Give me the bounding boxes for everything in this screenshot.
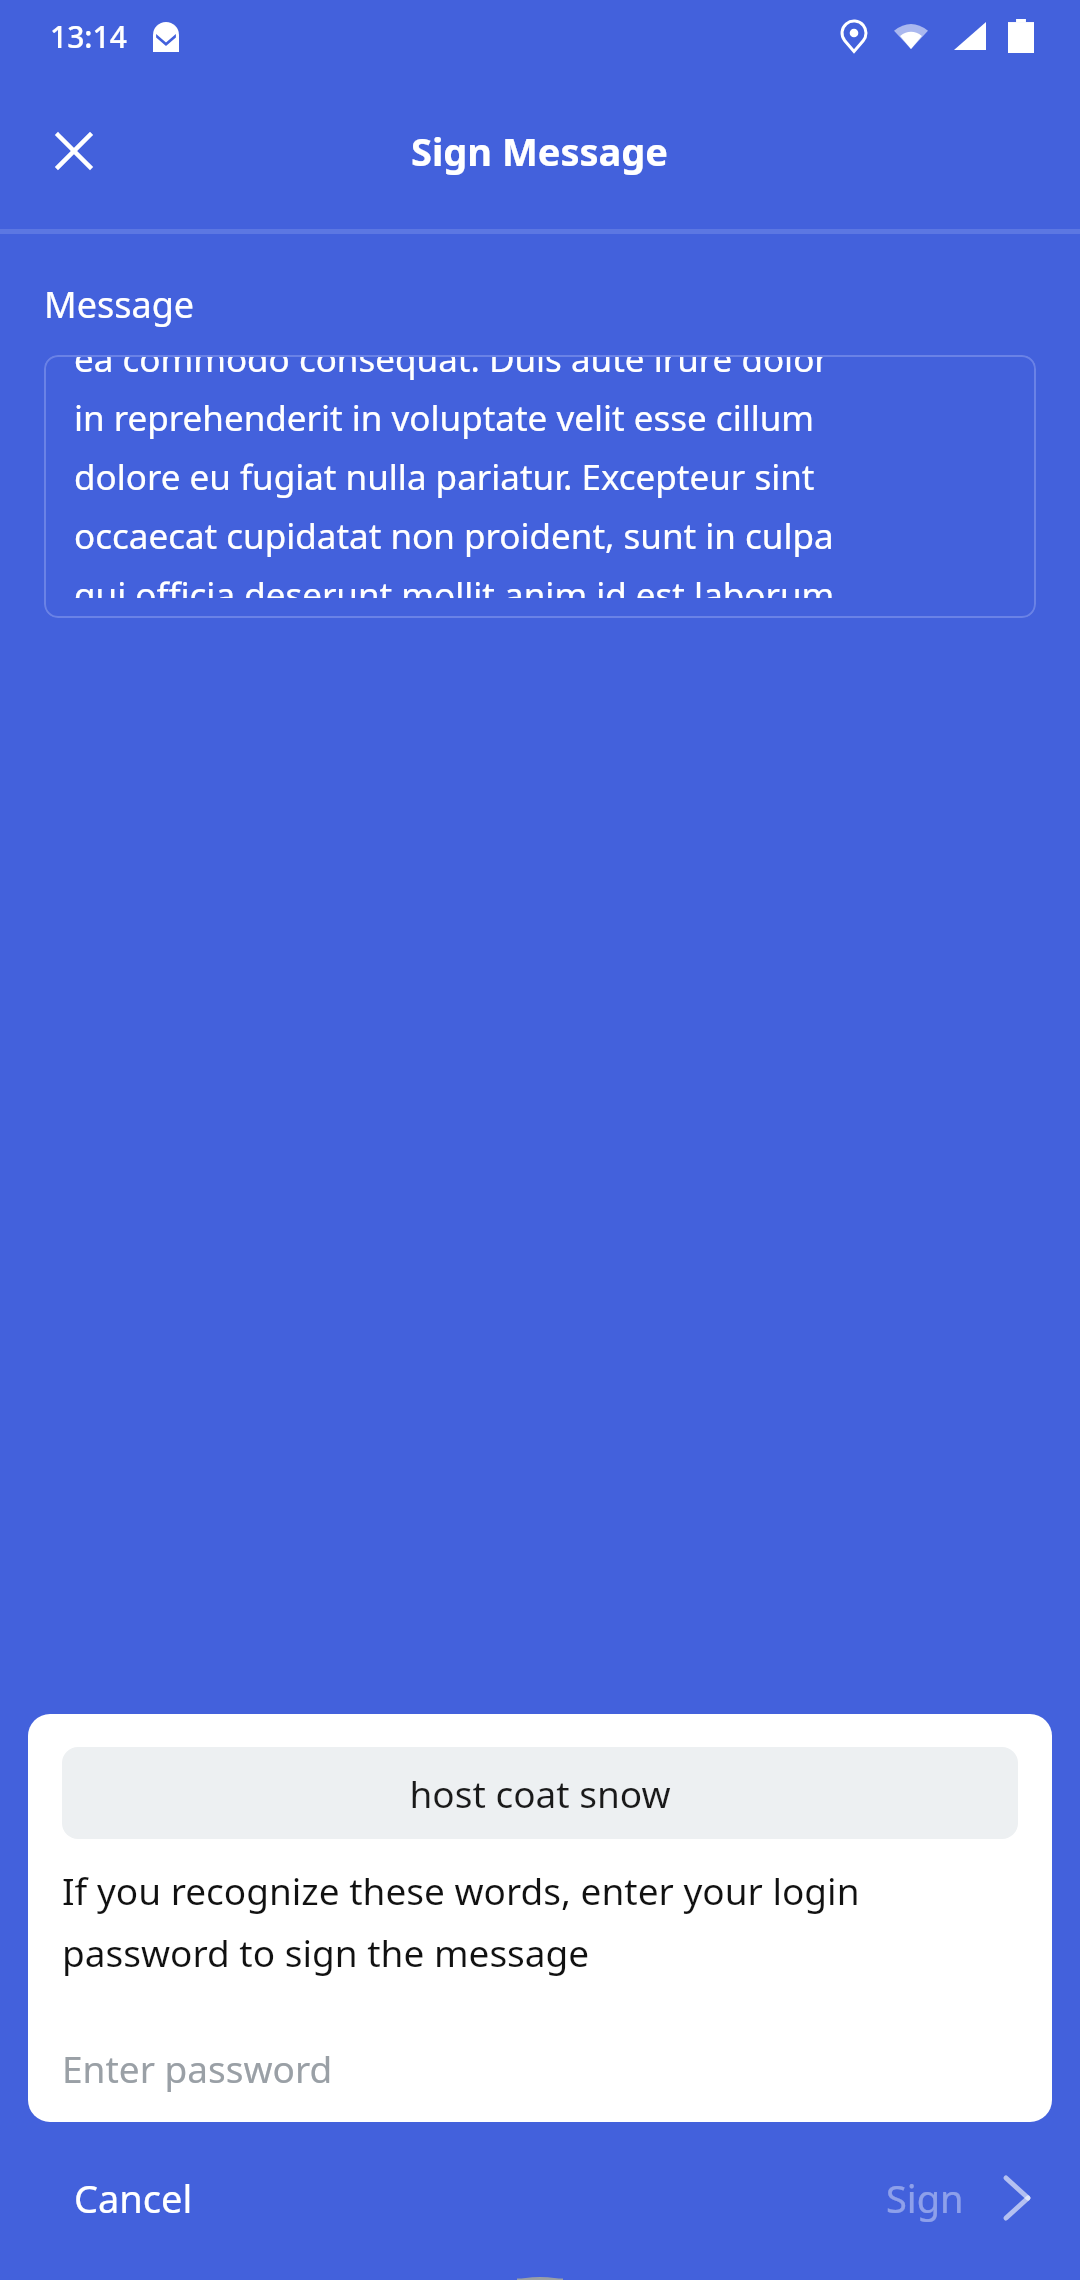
button[interactable]: host coat snow <box>62 1747 1018 1839</box>
staticText: in reprehenderit in voluptate velit esse… <box>74 394 815 442</box>
staticText: dolore eu fugiat nulla pariatur. Excepte… <box>74 453 815 501</box>
button[interactable]: ea commodo consequat. Duis aute irure do… <box>44 355 1036 618</box>
button[interactable]: Enter password <box>62 2029 1018 2107</box>
staticText: Cancel <box>74 2172 193 2224</box>
staticText: host coat snow <box>409 1768 671 1818</box>
staticText: Sign <box>886 2172 964 2224</box>
button[interactable]: Close <box>34 111 114 191</box>
staticText: qui officia deserunt mollit anim id est … <box>74 571 844 598</box>
button[interactable]: Cancel <box>42 2158 225 2238</box>
staticText: 13:14 <box>50 16 127 57</box>
staticText: ea commodo consequat. Duis aute irure do… <box>74 355 829 383</box>
staticText: If you recognize these words, enter your… <box>62 1865 860 1915</box>
button[interactable]: Sign <box>860 2160 1056 2236</box>
staticText: occaecat cupidatat non proident, sunt in… <box>74 512 834 560</box>
staticText: Message <box>44 280 195 329</box>
staticText: password to sign the message <box>62 1927 590 1977</box>
staticText: Sign Message <box>411 125 669 177</box>
staticText: Enter password <box>62 2043 333 2093</box>
